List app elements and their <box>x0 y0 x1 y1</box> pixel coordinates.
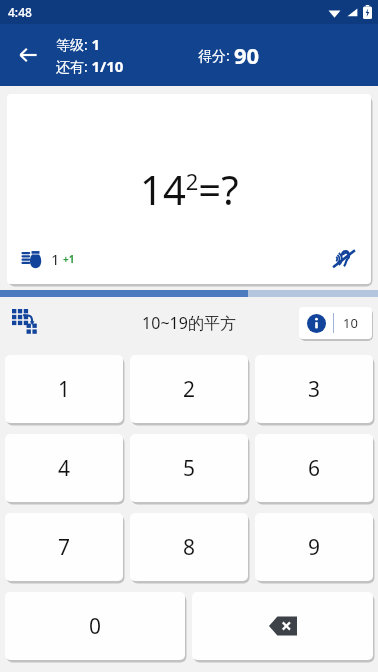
staticText: +1 <box>63 252 75 266</box>
staticText: 1 <box>58 375 71 404</box>
button[interactable]: 1 <box>5 355 123 423</box>
button[interactable]: 8 <box>130 513 248 581</box>
staticText: 还有: 1/10 <box>56 56 124 76</box>
button[interactable]: 9 <box>255 513 373 581</box>
staticText: 1 <box>51 249 60 269</box>
staticText: 5 <box>183 454 196 483</box>
button[interactable]: 2 <box>130 355 248 423</box>
button[interactable]: 3 <box>255 355 373 423</box>
staticText: 142=? <box>140 162 239 216</box>
staticText: 等级: 1 <box>56 34 100 54</box>
staticText: 9 <box>308 533 321 562</box>
staticText: 10 <box>343 314 358 332</box>
staticText: 2 <box>183 375 196 404</box>
staticText: 8 <box>183 533 196 562</box>
button[interactable]: 0 <box>5 592 185 660</box>
staticText: 7 <box>58 533 71 562</box>
button[interactable]: Topic grid <box>6 303 46 343</box>
staticText: 3 <box>308 375 321 404</box>
button[interactable]: 7 <box>5 513 123 581</box>
button[interactable]: 6 <box>255 434 373 502</box>
button[interactable]: Coins <box>21 248 75 270</box>
button[interactable]: 10 <box>299 307 372 339</box>
staticText: 4 <box>58 454 71 483</box>
staticText: 得分: <box>198 46 234 65</box>
staticText: 90 <box>234 40 260 70</box>
staticText: 0 <box>89 612 102 641</box>
button[interactable]: Mute sound <box>327 242 361 276</box>
staticText: 10~19的平方 <box>142 312 236 334</box>
button[interactable]: 5 <box>130 434 248 502</box>
staticText: 4:48 <box>8 4 32 20</box>
button[interactable]: Back <box>6 33 50 77</box>
button[interactable]: Backspace <box>192 592 373 660</box>
button[interactable]: 4 <box>5 434 123 502</box>
staticText: 6 <box>308 454 321 483</box>
